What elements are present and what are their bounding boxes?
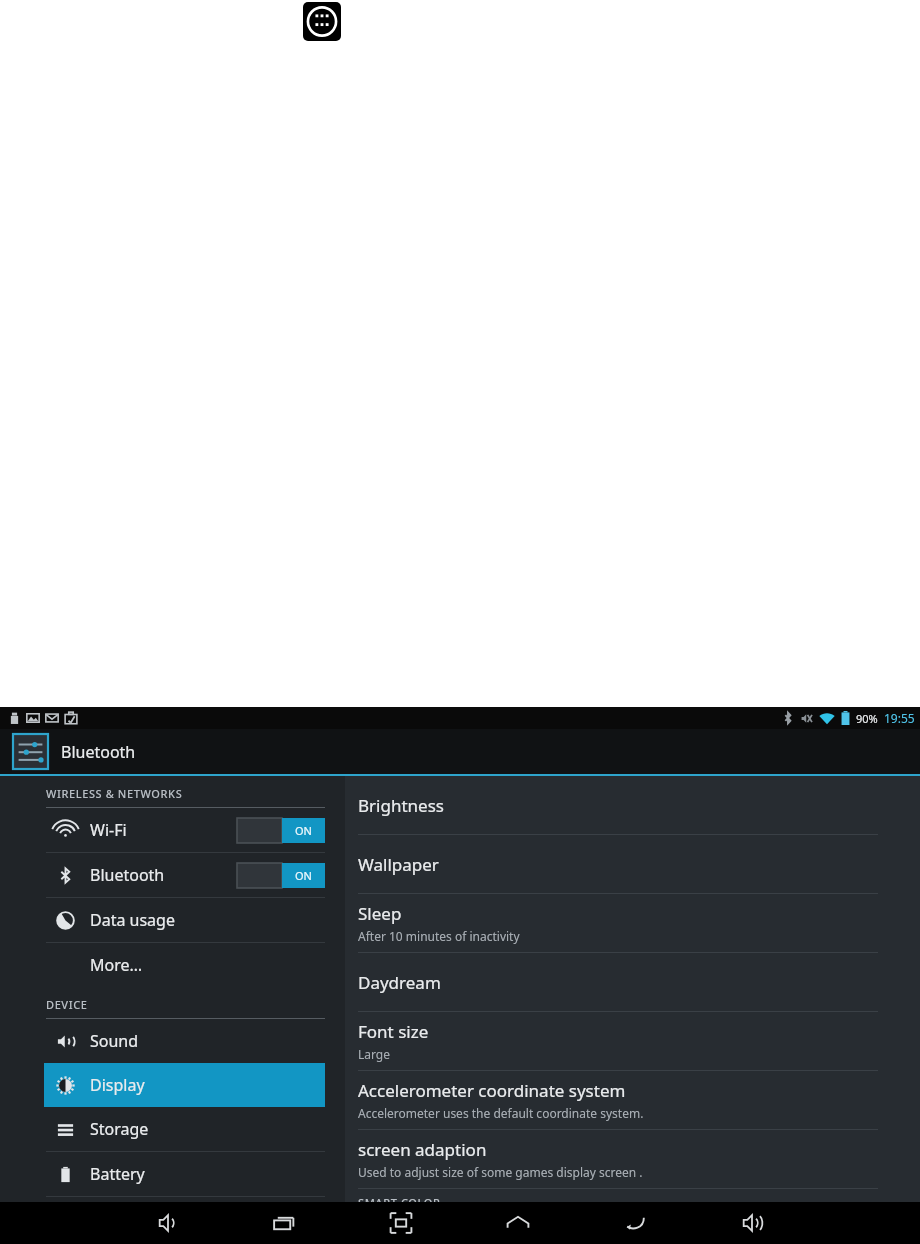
button[interactable]: Home [459, 1202, 576, 1244]
staticText: Bluetooth [90, 864, 165, 886]
staticText: Daydream [358, 971, 441, 994]
staticText: screen adaption [358, 1138, 487, 1161]
staticText: WIRELESS & NETWORKS [46, 786, 183, 801]
button[interactable]: Battery [44, 1152, 325, 1196]
button[interactable]: Brightness [345, 776, 920, 834]
button[interactable]: ON [237, 863, 325, 888]
button[interactable]: Screenshot [342, 1202, 459, 1244]
button[interactable]: Sound [44, 1019, 325, 1063]
staticText: Large [358, 1046, 391, 1062]
button[interactable]: ON [237, 818, 325, 843]
button[interactable]: Volume down [110, 1202, 226, 1244]
button[interactable]: Sleep [345, 894, 920, 952]
staticText: ON [295, 823, 312, 838]
button[interactable]: Storage [44, 1107, 325, 1151]
button[interactable]: Bluetooth [44, 853, 325, 897]
button[interactable]: Display [44, 1063, 325, 1107]
button[interactable]: Daydream [345, 953, 920, 1011]
button[interactable]: Font size [345, 1012, 920, 1070]
staticText: Sound [90, 1030, 139, 1052]
staticText: Font size [358, 1020, 429, 1043]
staticText: Bluetooth [61, 741, 136, 763]
staticText: ON [295, 868, 312, 883]
staticText: Wi-Fi [90, 819, 127, 841]
staticText: 19:55 [884, 710, 915, 726]
staticText: Sleep [358, 902, 402, 925]
staticText: More… [90, 954, 143, 976]
staticText: Storage [90, 1118, 149, 1140]
staticText: SMART COLOR [358, 1195, 441, 1202]
button[interactable]: Wi-Fi [44, 808, 325, 852]
staticText: After 10 minutes of inactivity [358, 928, 520, 944]
staticText: DEVICE [46, 997, 88, 1012]
staticText: Accelerometer coordinate system [358, 1079, 626, 1102]
staticText: 90% [856, 711, 878, 726]
button[interactable]: Accelerometer coordinate system [345, 1071, 920, 1129]
staticText: Display [90, 1074, 145, 1096]
button[interactable]: Wallpaper [345, 835, 920, 893]
staticText: Wallpaper [358, 853, 439, 876]
button[interactable]: screen adaption [345, 1130, 920, 1188]
button[interactable]: More… [44, 943, 325, 987]
button[interactable]: Volume up [693, 1202, 810, 1244]
button[interactable]: Back [576, 1202, 693, 1244]
button[interactable]: Bluetooth [0, 729, 920, 774]
button[interactable]: Data usage [44, 898, 325, 942]
staticText: Accelerometer uses the default coordinat… [358, 1105, 644, 1121]
staticText: Battery [90, 1163, 145, 1185]
button[interactable]: Recent apps [226, 1202, 342, 1244]
staticText: Used to adjust size of some games displa… [358, 1164, 643, 1180]
staticText: Data usage [90, 909, 175, 931]
button[interactable]: Apps [303, 2, 341, 41]
staticText: Brightness [358, 794, 444, 817]
